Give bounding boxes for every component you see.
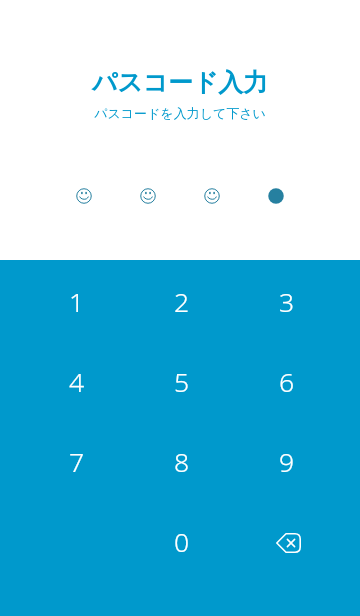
staticText: 2 — [174, 284, 190, 320]
staticText: 1 — [69, 284, 85, 320]
staticText: パスコード入力 — [92, 67, 268, 98]
button[interactable]: 6 — [234, 342, 339, 422]
button[interactable]: 5 — [129, 342, 234, 422]
staticText: 3 — [279, 284, 295, 320]
staticText: 5 — [174, 364, 190, 400]
button[interactable]: 3 — [234, 262, 339, 342]
button[interactable]: 1 — [24, 262, 129, 342]
staticText: 9 — [279, 444, 295, 480]
staticText: 8 — [174, 444, 190, 480]
staticText: パスコードを入力して下さい — [94, 105, 266, 121]
button[interactable]: 4 — [24, 342, 129, 422]
button[interactable]: 8 — [129, 422, 234, 502]
button[interactable]: 0 — [129, 502, 234, 582]
staticText: 6 — [279, 364, 295, 400]
other: Backspace — [276, 533, 301, 553]
staticText: 4 — [69, 364, 85, 400]
button[interactable]: 2 — [129, 262, 234, 342]
button[interactable]: 9 — [234, 422, 339, 502]
button[interactable]: Backspace — [234, 502, 339, 582]
staticText: 7 — [69, 444, 85, 480]
staticText: 0 — [174, 524, 190, 560]
button[interactable]: 7 — [24, 422, 129, 502]
